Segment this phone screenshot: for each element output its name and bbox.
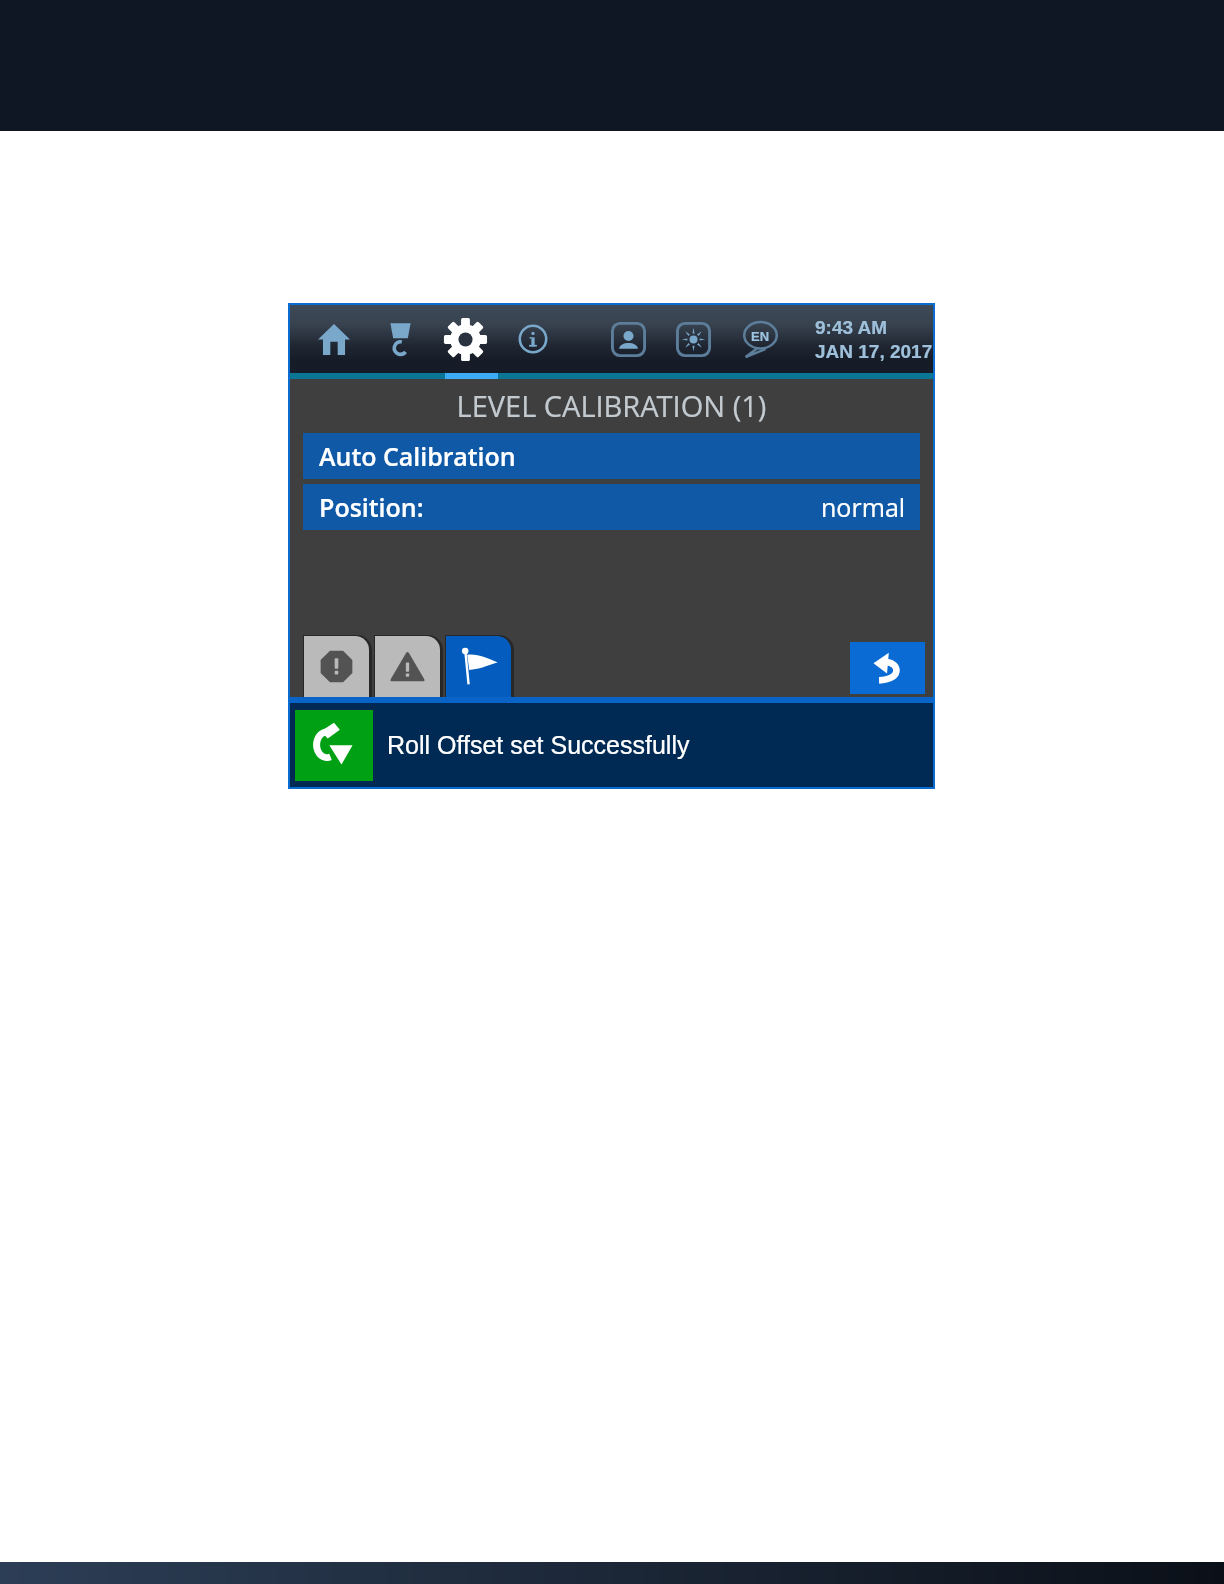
button[interactable]: Home: [308, 305, 360, 373]
staticText: EN: [751, 329, 770, 344]
staticText: Roll Offset set Successfully: [387, 731, 690, 759]
staticText: Position:: [319, 490, 424, 524]
staticText: JAN 17, 2017: [815, 341, 933, 362]
button[interactable]: Stop alerts: [303, 635, 372, 697]
staticText: 9:43 AM: [815, 317, 888, 338]
staticText: LEVEL CALIBRATION (1): [290, 386, 933, 425]
button[interactable]: Hook: [374, 305, 426, 373]
staticText: normal: [821, 490, 906, 524]
button[interactable]: Flags: [445, 635, 514, 697]
button[interactable]: Warnings: [374, 635, 443, 697]
button[interactable]: Brightness: [667, 305, 719, 373]
button[interactable]: Back: [850, 642, 925, 694]
button[interactable]: Info: [507, 305, 559, 373]
button[interactable]: Profile: [602, 305, 654, 373]
button[interactable]: Auto Calibration: [303, 433, 920, 479]
button[interactable]: Position:: [303, 484, 920, 530]
button[interactable]: Settings: [439, 305, 491, 373]
button[interactable]: Language: [734, 305, 786, 373]
staticText: Auto Calibration: [319, 439, 516, 473]
